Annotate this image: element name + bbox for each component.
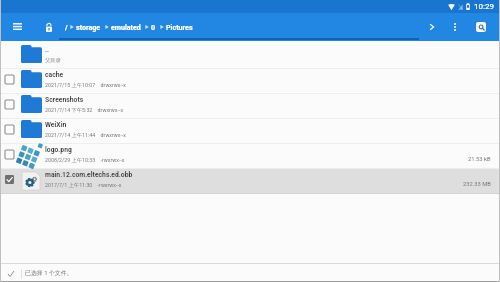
button[interactable]: Open navigation drawer: [8, 15, 26, 39]
button[interactable]: emulated: [103, 23, 143, 31]
staticText: logo.png: [45, 146, 72, 154]
staticText: 2021/7/15 上午10:07 drwxrwx--x: [45, 82, 126, 89]
button[interactable]: Forward: [424, 15, 440, 39]
button[interactable]: Screenshots: [0, 94, 500, 119]
staticText: 2017/7/1 上午11:30 -rwxrwx--x: [45, 182, 122, 189]
staticText: storage: [76, 23, 101, 31]
button[interactable]: Confirm selection: [6, 269, 16, 278]
staticText: Screenshots: [45, 96, 84, 104]
staticText: 0: [151, 23, 156, 31]
button[interactable]: ..: [0, 44, 500, 69]
staticText: 232.33 MB: [463, 181, 491, 188]
staticText: Pictures: [166, 23, 193, 31]
button[interactable]: main.12.com.eltechs.ed.obb: [0, 169, 500, 194]
staticText: cache: [45, 71, 64, 79]
staticText: WeiXin: [45, 121, 67, 129]
button[interactable]: /: [65, 23, 68, 31]
staticText: 已选择 1 个文件。: [25, 269, 73, 276]
button[interactable]: storage: [68, 23, 103, 31]
button[interactable]: 0: [143, 23, 158, 31]
staticText: 2021/7/14 上午11:44 drwxrwx--x: [45, 132, 126, 139]
staticText: 21.53 kB: [468, 156, 491, 163]
button[interactable]: logo.png: [0, 144, 500, 169]
button[interactable]: Search: [476, 22, 486, 32]
staticText: 父目录: [45, 57, 61, 64]
button[interactable]: cache: [0, 69, 500, 94]
button[interactable]: WeiXin: [0, 119, 500, 144]
staticText: emulated: [111, 23, 141, 31]
staticText: ..: [45, 46, 49, 54]
staticText: 2021/7/14 下午5:32 drwxrwx--x: [45, 107, 124, 114]
staticText: 10:29: [474, 2, 494, 11]
button[interactable]: More options: [449, 15, 461, 39]
button[interactable]: Toggle read only: [42, 15, 55, 39]
button[interactable]: Pictures: [158, 23, 195, 31]
staticText: 2008/2/29 上午10:33 -rwxrwx--x: [45, 157, 125, 164]
staticText: main.12.com.eltechs.ed.obb: [45, 171, 133, 179]
